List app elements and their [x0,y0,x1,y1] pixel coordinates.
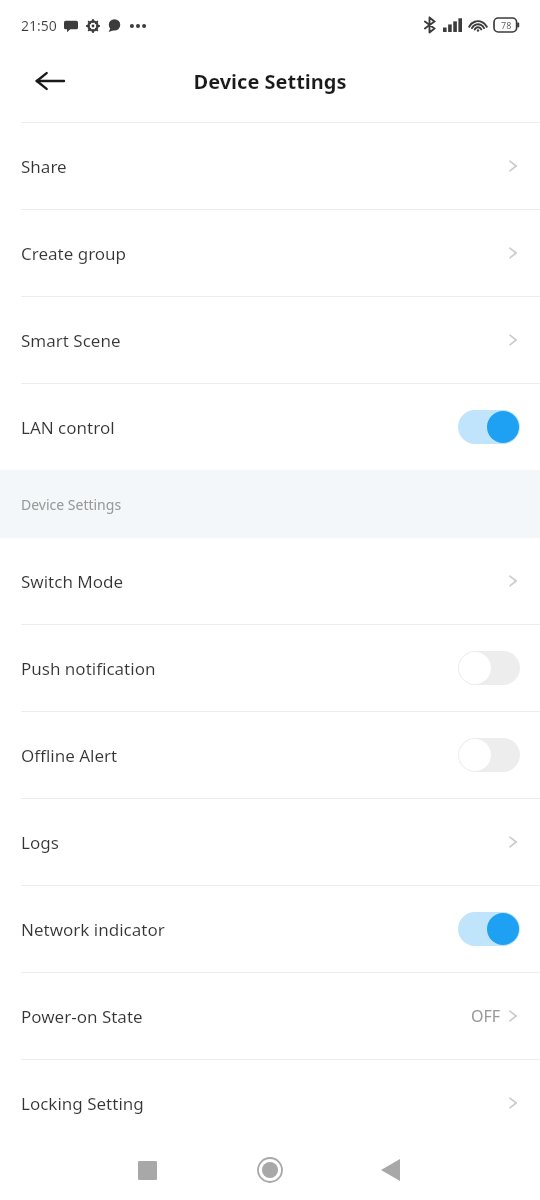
staticText: OFF [471,1005,501,1027]
staticText: Logs [21,831,59,854]
staticText: Device Settings [193,68,347,95]
staticText: Create group [21,242,127,265]
button[interactable]: Toggle on [458,912,520,946]
button[interactable]: Toggle off [458,738,520,772]
staticText: Push notification [21,657,156,680]
button[interactable]: Back [26,57,74,105]
staticText: LAN control [21,416,115,439]
staticText: 78 [501,19,512,31]
button[interactable]: Locking Setting [0,1060,540,1146]
button[interactable]: Toggle on [458,410,520,444]
staticText: Network indicator [21,918,165,941]
button[interactable]: Recents [125,1148,169,1192]
button[interactable]: Share [0,123,540,209]
button[interactable]: Network indicator [0,886,540,972]
button[interactable]: Home [247,1147,293,1193]
button[interactable]: Create group [0,210,540,296]
staticText: Switch Mode [21,570,124,593]
staticText: Offline Alert [21,744,118,767]
staticText: Power-on State [21,1005,143,1028]
staticText: Smart Scene [21,329,121,352]
button[interactable]: Back [368,1148,412,1192]
button[interactable]: Push notification [0,625,540,711]
button[interactable]: LAN control [0,384,540,470]
button[interactable]: Toggle off [458,651,520,685]
button[interactable]: Smart Scene [0,297,540,383]
staticText: Locking Setting [21,1092,144,1115]
staticText: Device Settings [21,495,122,514]
staticText: Share [21,155,67,178]
staticText: 21:50 [21,16,57,35]
button[interactable]: Switch Mode [0,538,540,624]
button[interactable]: Logs [0,799,540,885]
button[interactable]: Power-on State [0,973,540,1059]
button[interactable]: Offline Alert [0,712,540,798]
